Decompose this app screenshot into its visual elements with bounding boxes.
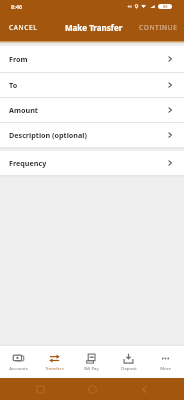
staticText: CANCEL <box>9 23 38 32</box>
staticText: To <box>9 80 18 90</box>
staticText: Deposit <box>121 365 137 371</box>
staticText: CONTINUE <box>139 23 178 32</box>
staticText: Bill Pay <box>84 365 99 371</box>
staticText: More <box>160 365 171 371</box>
staticText: Frequency <box>9 158 47 168</box>
button[interactable]: More <box>147 346 184 378</box>
button[interactable]: Back <box>134 379 154 399</box>
staticText: Transfers <box>45 365 64 371</box>
staticText: Make Transfer <box>65 22 123 33</box>
button[interactable]: Description (optional) <box>0 123 184 147</box>
staticText: Amount <box>9 105 38 115</box>
button[interactable]: Frequency <box>0 151 184 175</box>
staticText: Description (optional) <box>9 130 87 140</box>
button[interactable]: CONTINUE <box>133 13 184 41</box>
staticText: Accounts <box>9 365 28 371</box>
button[interactable]: Bill Pay <box>73 346 110 378</box>
staticText: 8:46 <box>11 3 23 11</box>
button[interactable]: Recent apps <box>30 379 50 399</box>
staticText: 88 <box>163 4 168 9</box>
button[interactable]: Transfers <box>36 346 73 378</box>
button[interactable]: Home <box>82 379 102 399</box>
button[interactable]: Deposit <box>110 346 147 378</box>
button[interactable]: CANCEL <box>0 13 47 41</box>
button[interactable]: Accounts <box>0 346 36 378</box>
staticText: From <box>9 54 28 64</box>
button[interactable]: To <box>0 73 184 97</box>
button[interactable]: From <box>0 46 184 72</box>
button[interactable]: Amount <box>0 98 184 122</box>
